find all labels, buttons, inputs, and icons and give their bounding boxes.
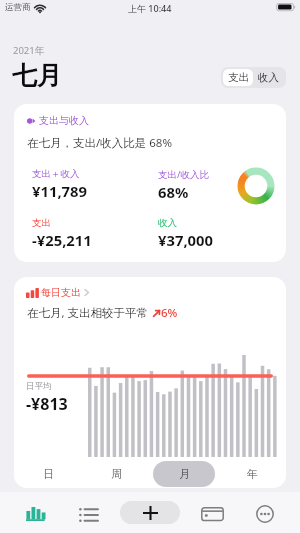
staticText: 在七月, 支出相较于平常 xyxy=(27,305,152,321)
button[interactable]: More xyxy=(256,505,274,523)
staticText: 收入 xyxy=(258,71,279,84)
staticText: -¥25,211 xyxy=(32,230,92,250)
staticText: 6% xyxy=(161,305,178,321)
button[interactable]: Statistics xyxy=(26,506,45,521)
staticText: 七月 xyxy=(12,60,62,91)
staticText: 支出/收入比 xyxy=(158,168,210,181)
staticText: 收入 xyxy=(158,217,177,229)
staticText: 日平均 xyxy=(26,381,52,392)
staticText: 支出与收入 xyxy=(39,114,89,127)
staticText: 在七月，支出/收入比是 68% xyxy=(27,135,172,151)
staticText: -¥813 xyxy=(26,393,68,415)
staticText: 周 xyxy=(111,467,122,481)
button[interactable]: 收入 xyxy=(253,69,284,86)
staticText: 每日支出 xyxy=(41,286,81,299)
staticText: ¥37,000 xyxy=(158,230,214,250)
button[interactable]: 支出与收入 xyxy=(14,104,286,262)
staticText: 2021年 xyxy=(13,44,45,57)
staticText: 支出 xyxy=(32,217,51,229)
staticText: ¥11,789 xyxy=(32,181,88,201)
staticText: 年 xyxy=(247,467,258,481)
button[interactable]: 月 xyxy=(153,461,215,487)
staticText: 月 xyxy=(179,467,190,481)
staticText: 日 xyxy=(43,467,54,481)
button[interactable]: 周 xyxy=(85,461,147,487)
button[interactable]: 每日支出 xyxy=(14,277,286,488)
staticText: 支出 xyxy=(228,71,249,84)
button[interactable]: 年 xyxy=(221,461,283,487)
staticText: 支出＋收入 xyxy=(32,168,80,180)
button[interactable]: 日 xyxy=(17,461,79,487)
staticText: 运营商 xyxy=(5,2,31,13)
button[interactable]: Transactions list xyxy=(79,508,98,522)
button[interactable]: Accounts xyxy=(201,507,224,522)
staticText: 68% xyxy=(158,182,189,202)
staticText: 上午 10:44 xyxy=(128,2,172,14)
button[interactable]: Add transaction xyxy=(120,501,180,524)
button[interactable]: 支出 xyxy=(223,69,253,86)
